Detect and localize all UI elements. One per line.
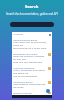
- staticText: Learn how to set up your project, instal…: [13, 41, 51, 50]
- button[interactable]: Navigation basics: [13, 79, 51, 90]
- button[interactable]: Release checklist: [13, 90, 51, 95]
- button[interactable]: All results: [13, 33, 51, 36]
- button[interactable]: Installation and setup: [13, 51, 51, 65]
- button[interactable]: Search field: [10, 22, 54, 27]
- button[interactable]: Getting started guide: [13, 37, 51, 51]
- staticText: Colors, typography and shapes that defin…: [13, 69, 47, 78]
- button[interactable]: Compose: [46, 89, 50, 93]
- staticText: Move between screens with the nav graph.: [13, 83, 47, 89]
- staticText: All results: [13, 33, 23, 36]
- staticText: Install the toolchain, configure the SDK…: [13, 55, 47, 64]
- staticText: Navigation basics: [13, 80, 33, 83]
- staticText: Release checklist: [13, 91, 32, 94]
- staticText: Installation and setup: [13, 52, 38, 55]
- staticText: Search: [25, 4, 39, 9]
- staticText: Theming reference: [13, 66, 35, 69]
- button[interactable]: Theming reference: [13, 65, 51, 79]
- staticText: Getting started guide: [13, 38, 38, 41]
- staticText: Search the documentation, guides and API: [6, 12, 58, 16]
